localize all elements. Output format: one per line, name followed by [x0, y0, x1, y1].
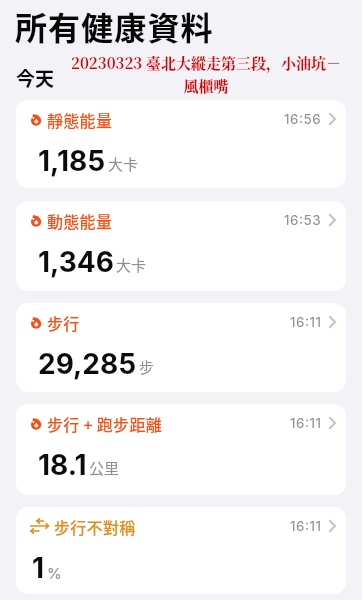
staticText: 步行不對稱 — [54, 515, 136, 537]
staticText: 今天 — [16, 64, 55, 92]
button[interactable]: 步行 + 跑步距離 — [16, 404, 346, 495]
staticText: 1,346 — [38, 245, 114, 279]
staticText: 16:11 — [290, 415, 322, 431]
staticText: 動態能量 — [47, 209, 113, 231]
staticText: 1,185 — [38, 144, 106, 178]
staticText: 步行 — [47, 311, 80, 333]
staticText: 29,285 — [38, 347, 137, 381]
staticText: % — [47, 564, 62, 582]
staticText: 20230323 臺北大縱走第三段，小油坑－ 風櫃嘴 — [60, 52, 352, 97]
staticText: 大卡 — [108, 153, 139, 175]
staticText: 1 — [32, 551, 45, 585]
button[interactable]: 步行不對稱 — [16, 507, 346, 594]
button[interactable]: 步行 — [16, 303, 346, 392]
staticText: 18.1 — [38, 448, 87, 482]
button[interactable]: 動態能量 — [16, 201, 346, 291]
staticText: 16:56 — [284, 111, 322, 127]
staticText: 大卡 — [116, 254, 147, 276]
staticText: 16:11 — [290, 518, 322, 534]
staticText: 16:53 — [284, 212, 322, 228]
staticText: 所有健康資料 — [15, 3, 214, 49]
staticText: 步行 + 跑步距離 — [47, 412, 163, 434]
button[interactable]: 靜態能量 — [16, 100, 346, 188]
staticText: 16:11 — [290, 314, 322, 330]
staticText: 步 — [139, 356, 155, 378]
staticText: 公里 — [89, 457, 120, 479]
staticText: 靜態能量 — [47, 108, 113, 130]
